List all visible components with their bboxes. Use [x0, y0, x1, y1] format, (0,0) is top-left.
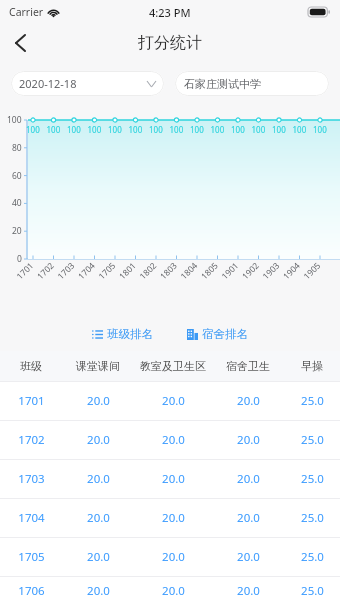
button[interactable]: 1704	[0, 499, 340, 537]
staticText: 25.0	[301, 549, 324, 565]
staticText: 早操	[301, 359, 323, 373]
staticText: 20.0	[87, 549, 110, 565]
staticText: 25.0	[301, 471, 324, 487]
staticText: 1701	[18, 393, 45, 409]
staticText: 班级	[20, 359, 42, 373]
staticText: 20.0	[87, 583, 110, 599]
staticText: 1706	[18, 583, 45, 599]
button[interactable]: 1706	[0, 577, 340, 604]
staticText: 班级排名	[107, 327, 153, 341]
button[interactable]: 班级排名	[88, 323, 157, 345]
staticText: 20.0	[237, 510, 260, 526]
staticText: 20.0	[87, 393, 110, 409]
button[interactable]: 1705	[0, 538, 340, 576]
staticText: 宿舍排名	[202, 327, 248, 341]
staticText: 2020-12-18	[19, 76, 147, 91]
staticText: 20.0	[87, 510, 110, 526]
button[interactable]: 石家庄测试中学	[175, 71, 329, 96]
button[interactable]: 宿舍排名	[183, 323, 252, 345]
staticText: 20.0	[162, 510, 185, 526]
staticText: 教室及卫生区	[140, 359, 206, 373]
staticText: 20.0	[237, 583, 260, 599]
staticText: 20.0	[162, 549, 185, 565]
staticText: 1702	[18, 432, 45, 448]
staticText: 25.0	[301, 510, 324, 526]
staticText: Carrier	[9, 5, 44, 19]
staticText: 课堂课间	[76, 359, 120, 373]
staticText: 20.0	[237, 432, 260, 448]
staticText: 1703	[18, 471, 45, 487]
staticText: 20.0	[162, 583, 185, 599]
staticText: 20.0	[237, 393, 260, 409]
staticText: 20.0	[87, 432, 110, 448]
button[interactable]: 1702	[0, 421, 340, 459]
button[interactable]: Back	[0, 24, 40, 61]
staticText: 20.0	[162, 471, 185, 487]
button[interactable]: 1701	[0, 382, 340, 420]
staticText: 25.0	[301, 432, 324, 448]
staticText: 1704	[18, 510, 45, 526]
staticText: 25.0	[301, 393, 324, 409]
button[interactable]: 1703	[0, 460, 340, 498]
staticText: 石家庄测试中学	[184, 77, 261, 91]
staticText: 20.0	[237, 471, 260, 487]
staticText: 4:23 PM	[149, 5, 191, 20]
staticText: 打分统计	[138, 33, 202, 53]
staticText: 20.0	[87, 471, 110, 487]
staticText: 20.0	[162, 393, 185, 409]
staticText: 宿舍卫生	[226, 359, 270, 373]
button[interactable]: 2020-12-18	[11, 71, 164, 96]
staticText: 20.0	[162, 432, 185, 448]
staticText: 25.0	[301, 583, 324, 599]
staticText: 1705	[18, 549, 45, 565]
staticText: 20.0	[237, 549, 260, 565]
